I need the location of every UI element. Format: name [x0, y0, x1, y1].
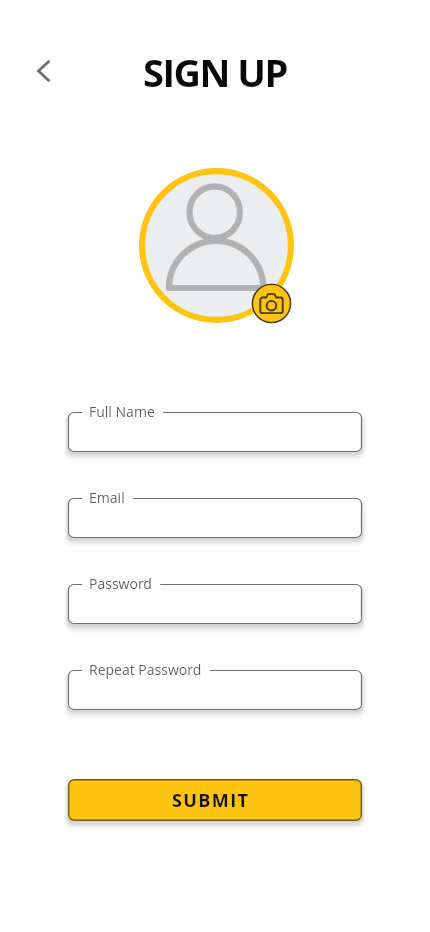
staticText: Repeat Password [89, 660, 202, 679]
staticText: SIGN UP [0, 46, 430, 98]
staticText: SUBMIT [172, 788, 250, 813]
button[interactable]: SUBMIT [68, 779, 362, 821]
staticText: Email [89, 488, 125, 507]
button[interactable]: Password [68, 584, 362, 624]
button[interactable]: Repeat Password [68, 670, 362, 710]
staticText: Full Name [89, 402, 155, 421]
button[interactable]: Email [68, 498, 362, 538]
staticText: Password [89, 574, 152, 593]
button[interactable]: Back [20, 47, 68, 95]
button[interactable]: Full Name [68, 412, 362, 452]
button[interactable]: Change profile photo [251, 283, 292, 324]
